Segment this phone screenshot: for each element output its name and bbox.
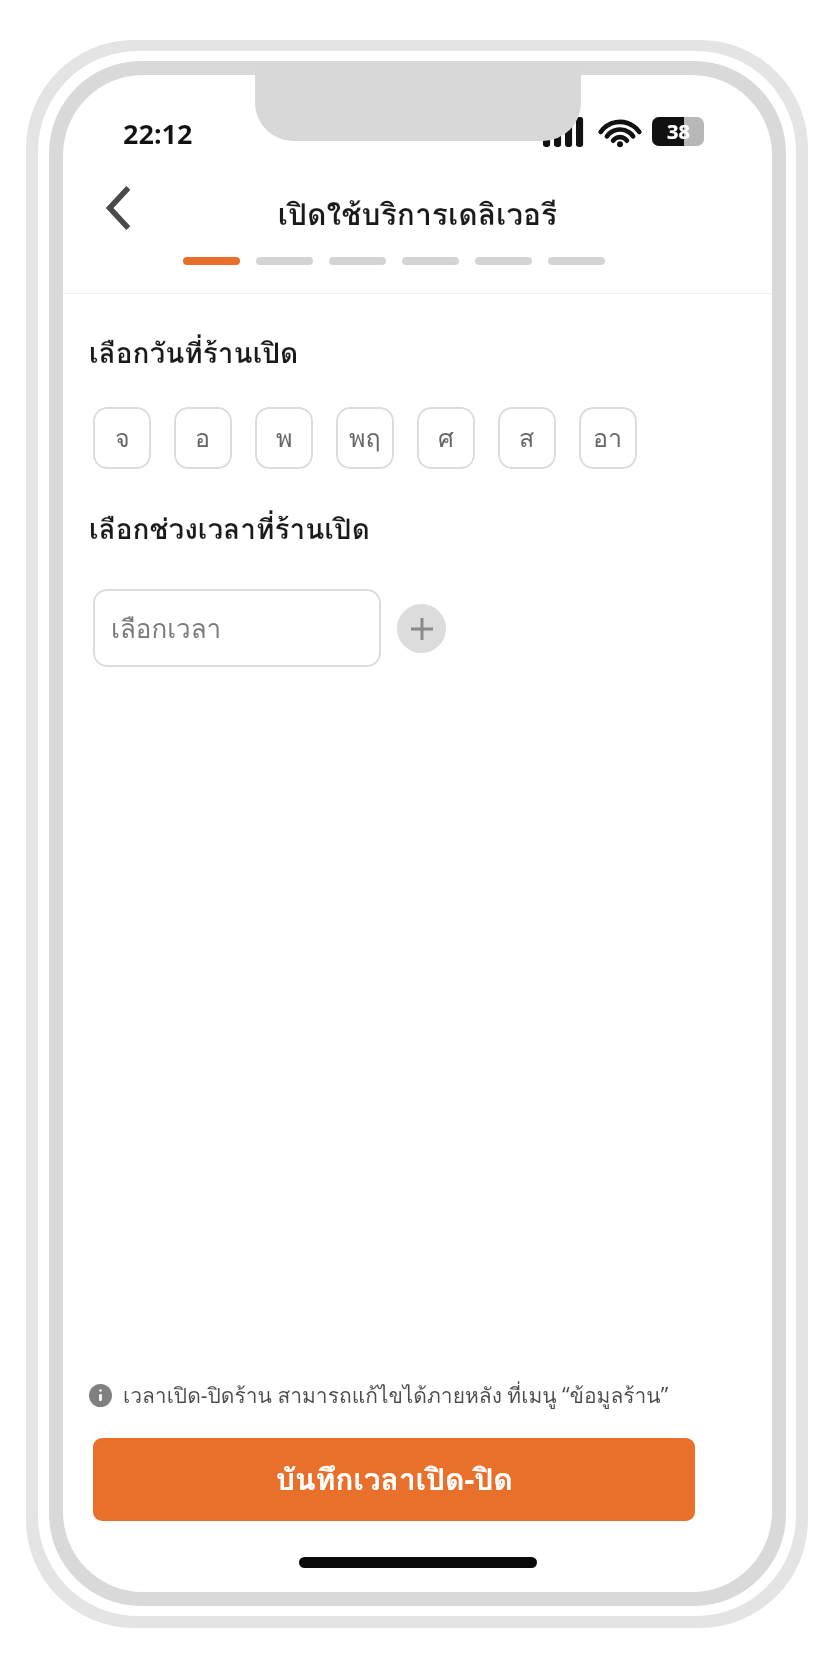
button[interactable]: เลือกเวลา: [93, 589, 381, 667]
button[interactable]: พ: [255, 407, 313, 469]
staticText: เปิดใช้บริการเดลิเวอรี: [63, 191, 772, 239]
button[interactable]: อ: [174, 407, 232, 469]
staticText: เลือกวันที่ร้านเปิด: [89, 331, 299, 376]
staticText: พ: [276, 418, 293, 458]
button[interactable]: ศ: [417, 407, 475, 469]
staticText: 38: [667, 118, 690, 145]
button[interactable]: บันทึกเวลาเปิด-ปิด: [93, 1438, 695, 1521]
staticText: เวลาเปิด-ปิดร้าน สามารถแก้ไขได้ภายหลัง ท…: [123, 1379, 669, 1412]
staticText: พฤ: [349, 418, 381, 458]
staticText: ศ: [438, 418, 454, 458]
staticText: บันทึกเวลาเปิด-ปิด: [276, 1456, 513, 1504]
staticText: เลือกเวลา: [111, 608, 222, 649]
staticText: เลือกช่วงเวลาที่ร้านเปิด: [89, 507, 370, 552]
button[interactable]: Add time slot: [397, 604, 446, 653]
staticText: อ: [195, 418, 211, 458]
button[interactable]: ส: [498, 407, 556, 469]
staticText: จ: [115, 418, 130, 458]
staticText: อา: [593, 418, 623, 458]
button[interactable]: อา: [579, 407, 637, 469]
button[interactable]: จ: [93, 407, 151, 469]
button[interactable]: Back: [85, 175, 151, 241]
staticText: ส: [519, 418, 535, 458]
button[interactable]: พฤ: [336, 407, 394, 469]
staticText: 22:12: [123, 115, 193, 152]
